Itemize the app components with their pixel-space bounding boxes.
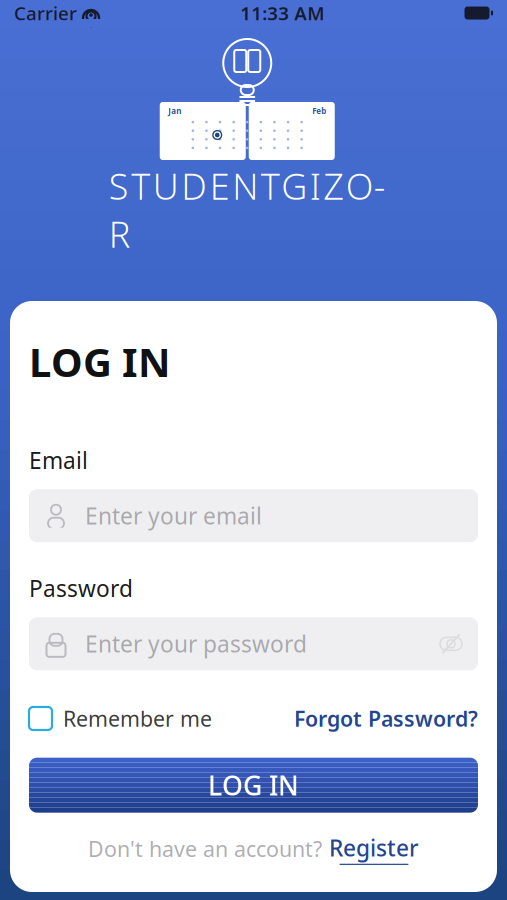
staticText: LOG IN bbox=[29, 335, 171, 388]
button[interactable]: Register bbox=[329, 833, 419, 865]
staticText: Email bbox=[29, 445, 88, 475]
staticText: Password bbox=[29, 573, 133, 603]
staticText: Enter your password bbox=[85, 629, 307, 659]
button[interactable]: Enter your password bbox=[29, 617, 478, 670]
button[interactable]: Remember me bbox=[29, 704, 212, 733]
staticText: STUDENTGIZOR bbox=[109, 162, 386, 258]
staticText: Register bbox=[329, 833, 419, 863]
staticText: Jan bbox=[168, 106, 181, 116]
button[interactable]: Forgot Password? bbox=[294, 704, 478, 733]
staticText: Don't have an account? bbox=[88, 835, 322, 863]
staticText: Remember me bbox=[63, 704, 212, 733]
button[interactable]: LOG IN bbox=[29, 758, 478, 813]
staticText: Enter your email bbox=[85, 501, 262, 531]
staticText: Feb bbox=[312, 106, 326, 116]
staticText: Forgot Password? bbox=[294, 704, 478, 733]
staticText: 11:33 AM bbox=[240, 1, 324, 25]
staticText: Carrier bbox=[14, 1, 77, 25]
button[interactable]: Enter your email bbox=[29, 489, 478, 542]
staticText: LOG IN bbox=[208, 767, 299, 803]
